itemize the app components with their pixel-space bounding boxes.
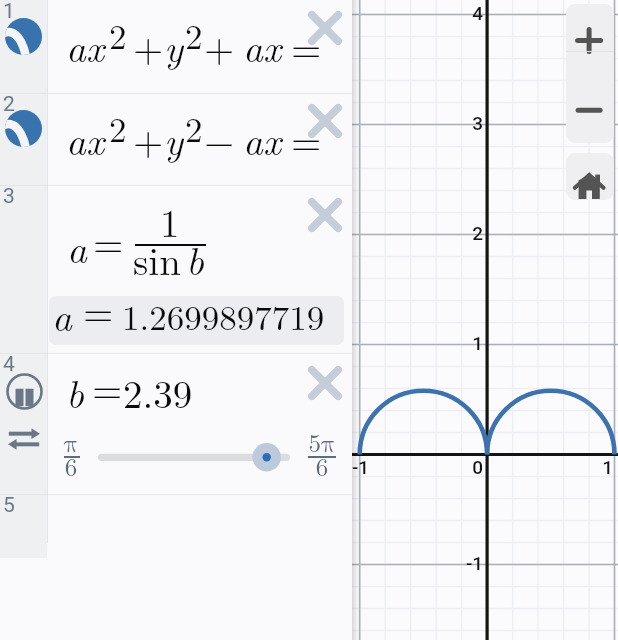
button[interactable]: Delete row [304,194,346,236]
staticText: π [41,432,101,457]
staticText: 3 [413,112,483,134]
staticText: 5π [292,432,352,457]
staticText: = [291,111,322,166]
staticText: + [133,111,164,166]
staticText: 2 [109,10,127,60]
staticText: 2 [185,10,203,60]
staticText: 5 [3,493,15,518]
button[interactable]: Delete row [304,7,346,49]
staticText: 1 [543,456,613,478]
staticText: b [66,364,84,419]
staticText: = [93,213,124,268]
staticText: ax [243,18,282,73]
staticText: 2 [109,103,127,153]
staticText: 4 [413,2,483,24]
button[interactable]: Delete row [304,362,346,404]
staticText: 1 [3,0,15,24]
staticText: a [52,287,72,342]
staticText: ax [243,111,282,166]
staticText: ax [66,18,105,73]
button[interactable] [49,296,344,345]
staticText: − [204,111,235,166]
staticText: 1 [413,332,483,354]
staticText: ax [66,111,105,166]
staticText: y [164,111,183,166]
staticText: -1 [413,552,483,574]
staticText: -1 [299,456,369,478]
staticText: + [133,18,164,73]
staticText: 0 [413,456,483,478]
button[interactable]: Reset view [566,153,614,200]
staticText: 2.39 [123,364,193,419]
staticText: b [186,231,204,286]
staticText: a [67,219,87,274]
staticText: 6 [41,456,101,481]
staticText: y [164,18,183,73]
other: Toggle oscillation [5,420,43,458]
staticText: 4 [3,352,15,377]
staticText: 1 [160,193,180,248]
staticText: = [83,282,114,337]
button[interactable]: Zoom in [566,4,614,51]
staticText: sin [133,231,181,286]
other: Toggle conic visibility [5,18,42,55]
staticText: 6 [292,456,352,481]
other: Pause animation [6,373,43,410]
staticText: 1.2699897719 [122,291,325,341]
staticText: 3 [3,184,15,209]
staticText: 2 [3,92,15,117]
staticText: + [204,18,235,73]
button[interactable]: Zoom out [566,52,614,143]
staticText: 2 [185,103,203,153]
other: Toggle conic visibility [5,110,42,147]
button[interactable]: Delete row [304,100,346,142]
staticText: 2 [413,222,483,244]
staticText: = [291,18,322,73]
staticText: = [92,359,123,414]
